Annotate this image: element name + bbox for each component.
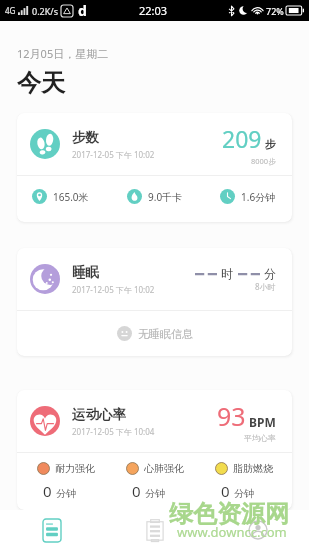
staticText: 睡眠 (72, 264, 99, 281)
staticText: 0 (221, 481, 230, 501)
button[interactable]: 步数 (17, 113, 292, 222)
staticText: 心肺强化 (144, 462, 184, 475)
staticText: 4G (5, 5, 16, 16)
staticText: 时 (221, 266, 233, 281)
staticText: 脂肪燃烧 (233, 462, 273, 475)
staticText: 9.0千卡 (148, 190, 183, 204)
button[interactable]: 今天 (0, 510, 103, 550)
staticText: 今天 (17, 68, 65, 98)
staticText: 12月05日，星期二 (17, 46, 109, 61)
staticText: 2017-12-05 下午 10:04 (72, 426, 155, 437)
staticText: 2017-12-05 下午 10:02 (72, 284, 155, 295)
staticText: 0 (132, 481, 141, 501)
staticText: 步数 (72, 129, 99, 146)
staticText: 运动心率 (72, 406, 126, 423)
staticText: 165.0米 (53, 190, 89, 204)
staticText: 耐力强化 (55, 462, 95, 475)
staticText: 平均心率 (244, 433, 276, 443)
staticText: 0 (43, 481, 52, 501)
staticText: 无睡眠信息 (138, 327, 193, 341)
staticText: 步 (265, 137, 276, 151)
button[interactable]: 睡眠 (17, 248, 292, 356)
button[interactable]: 运动心率 (17, 390, 292, 510)
staticText: 分钟 (234, 487, 254, 500)
staticText: 分 (264, 266, 276, 281)
staticText: 8000步 (251, 156, 276, 166)
button[interactable]: 我的 (206, 510, 309, 550)
staticText: 1.6分钟 (241, 190, 276, 204)
staticText: 分钟 (145, 487, 165, 500)
staticText: BPM (249, 414, 276, 430)
button[interactable]: 报告 (103, 510, 206, 550)
staticText: 93 (217, 399, 246, 433)
staticText: 8小时 (255, 281, 276, 292)
staticText: 22:03 (139, 3, 168, 18)
staticText: 分钟 (56, 487, 76, 500)
staticText: d (78, 1, 87, 20)
staticText: www.downcc.com (177, 523, 287, 541)
staticText: 72% (266, 5, 284, 17)
staticText: 绿色资源网 (169, 499, 289, 529)
staticText: 0.2K/s (32, 5, 58, 17)
staticText: 209 (222, 123, 262, 154)
staticText: 2017-12-05 下午 10:02 (72, 149, 155, 160)
